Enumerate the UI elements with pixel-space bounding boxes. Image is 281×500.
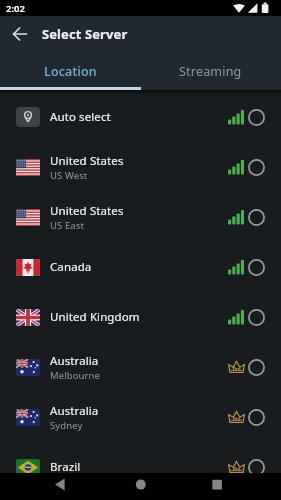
staticText: Melbourne bbox=[50, 369, 100, 382]
button[interactable]: Brazil bbox=[0, 442, 281, 473]
button[interactable]: Australia bbox=[0, 392, 281, 442]
staticText: Pro bbox=[233, 366, 241, 372]
staticText: US East bbox=[50, 219, 84, 232]
staticText: Brazil bbox=[50, 459, 81, 473]
staticText: Pro bbox=[233, 416, 241, 422]
staticText: Select Server bbox=[42, 25, 128, 43]
staticText: United Kingdom bbox=[50, 309, 140, 325]
staticText: Australia bbox=[50, 403, 99, 419]
staticText: Canada bbox=[50, 259, 92, 275]
button[interactable] bbox=[187, 473, 281, 500]
staticText: 2:02 bbox=[6, 2, 25, 15]
staticText: Auto select bbox=[50, 109, 111, 125]
staticText: Location bbox=[44, 63, 97, 80]
staticText: Australia bbox=[50, 353, 99, 369]
button[interactable]: United States bbox=[0, 142, 281, 192]
button[interactable]: Canada bbox=[0, 242, 281, 292]
button[interactable]: Streaming bbox=[140, 52, 281, 90]
button[interactable] bbox=[93, 473, 187, 500]
staticText: United States bbox=[50, 203, 124, 219]
button[interactable]: Location bbox=[0, 52, 140, 90]
staticText: Streaming bbox=[179, 63, 242, 80]
button[interactable]: Australia bbox=[0, 342, 281, 392]
staticText: Sydney bbox=[50, 419, 83, 432]
staticText: United States bbox=[50, 153, 124, 169]
staticText: Pro bbox=[233, 466, 241, 472]
button[interactable]: Auto select bbox=[0, 92, 281, 142]
staticText: US West bbox=[50, 169, 88, 182]
button[interactable]: United States bbox=[0, 192, 281, 242]
button[interactable] bbox=[13, 27, 27, 41]
button[interactable]: United Kingdom bbox=[0, 292, 281, 342]
button[interactable] bbox=[0, 473, 93, 500]
